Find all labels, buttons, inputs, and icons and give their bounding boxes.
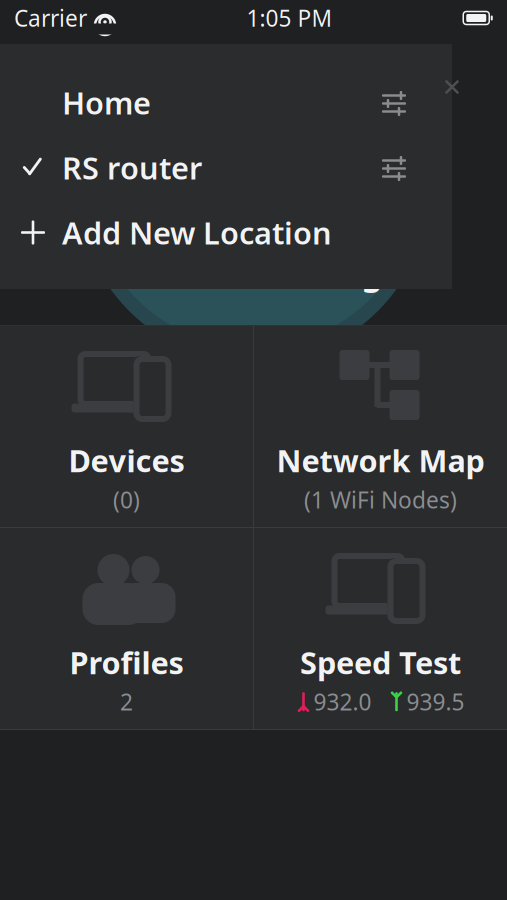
button[interactable]: Add New Location	[0, 200, 452, 265]
button[interactable]: RS router	[0, 135, 452, 200]
button[interactable]: Close	[435, 70, 469, 104]
button[interactable]: Devices	[0, 326, 253, 527]
button[interactable]: Network Map	[254, 326, 507, 527]
button[interactable]: Profiles	[0, 528, 253, 729]
staticText: RS router	[62, 147, 202, 188]
staticText: (0)	[113, 485, 140, 515]
staticText: Add New Location	[62, 212, 332, 253]
button[interactable]: Speed Test	[254, 528, 507, 729]
staticText: Profiles	[69, 642, 183, 683]
staticText: Network Settings	[107, 250, 399, 294]
staticText: 932.0	[313, 687, 371, 717]
staticText: Network Map	[276, 440, 484, 481]
staticText: (1 WiFi Nodes)	[304, 485, 457, 515]
button[interactable]: IQ	[0, 80, 507, 325]
staticText: 2	[120, 687, 133, 717]
staticText: Carrier	[14, 3, 87, 33]
staticText: 1:05 PM	[246, 3, 332, 33]
staticText: Devices	[68, 440, 184, 481]
staticText: Home	[62, 82, 151, 123]
staticText: 939.5	[406, 687, 464, 717]
button[interactable]: Home	[0, 70, 452, 135]
staticText: Speed Test	[300, 642, 461, 683]
